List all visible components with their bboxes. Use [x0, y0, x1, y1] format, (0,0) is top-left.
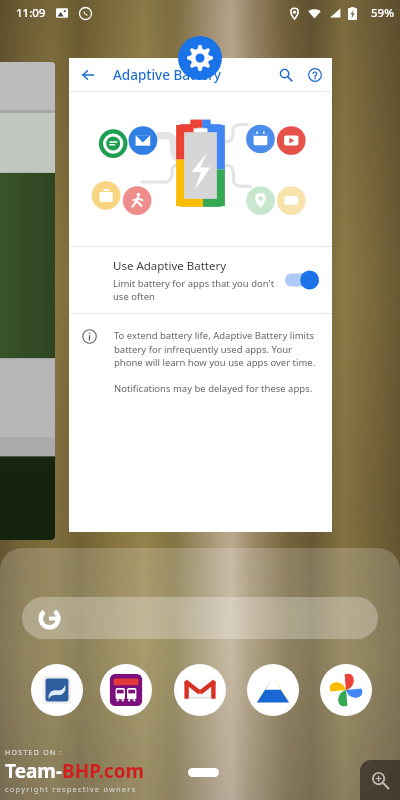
button[interactable]: Recent app	[0, 62, 55, 540]
button[interactable]: Photos	[320, 664, 372, 716]
staticText: 11:09	[16, 5, 46, 21]
staticText: HOSTED ON :	[5, 748, 63, 758]
staticText: Adaptive Battery	[113, 66, 221, 84]
button[interactable]: Drive	[247, 664, 299, 716]
staticText: BHP.com	[62, 758, 145, 784]
staticText: To extend battery life, Adaptive Battery…	[114, 329, 318, 368]
button[interactable]: Settings	[178, 36, 222, 80]
button[interactable]: Help	[302, 62, 328, 88]
staticText: 59%	[371, 5, 394, 21]
button[interactable]: Google search	[22, 597, 378, 639]
button[interactable]: Bus app	[100, 664, 152, 716]
staticText: copyright respective owners	[5, 784, 137, 794]
button[interactable]: Search	[273, 62, 299, 88]
staticText: Limit battery for apps that you don't us…	[113, 277, 279, 303]
button[interactable]: Bank app	[31, 664, 83, 716]
button[interactable]: Zoom	[360, 760, 400, 800]
staticText: Use Adaptive Battery	[113, 258, 227, 274]
staticText: Team-	[5, 758, 62, 784]
staticText: Notifications may be delayed for these a…	[114, 382, 313, 395]
button[interactable]: Back	[75, 62, 101, 88]
button[interactable]: Gmail	[174, 664, 226, 716]
button[interactable]: Use Adaptive Battery	[69, 247, 332, 313]
